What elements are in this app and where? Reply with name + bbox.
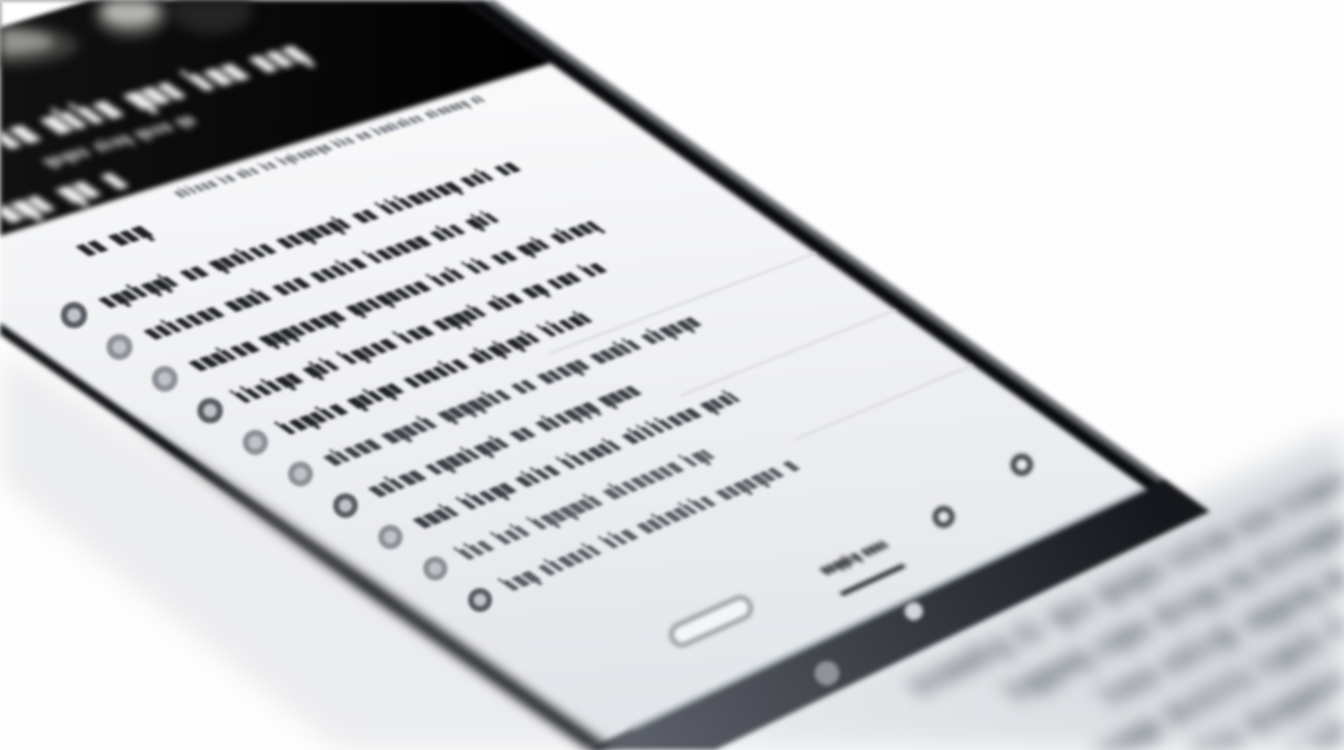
- button[interactable]: [221, 253, 855, 509]
- button[interactable]: [358, 337, 974, 604]
- button[interactable]: [130, 196, 776, 445]
- button[interactable]: [403, 366, 1013, 637]
- button[interactable]: [84, 168, 737, 413]
- button[interactable]: Home: [618, 570, 810, 673]
- button[interactable]: [175, 224, 815, 476]
- button[interactable]: [38, 139, 697, 380]
- button[interactable]: Navigate up: [0, 123, 15, 228]
- button[interactable]: [0, 111, 658, 349]
- button[interactable]: Profile: [950, 425, 1099, 508]
- button[interactable]: More options: [293, 0, 496, 71]
- button[interactable]: [312, 309, 934, 572]
- button[interactable]: Notifications: [879, 474, 1023, 555]
- button[interactable]: [0, 190, 249, 302]
- button[interactable]: [267, 281, 895, 541]
- button[interactable]: [758, 511, 940, 609]
